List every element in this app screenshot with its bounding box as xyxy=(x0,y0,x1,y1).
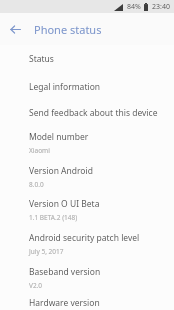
button[interactable]: Hardware version xyxy=(0,295,174,310)
button[interactable]: Version O UI Beta xyxy=(0,193,174,227)
button[interactable]: Back xyxy=(0,14,30,44)
staticText: Send feedback about this device xyxy=(29,107,158,119)
staticText: Model number xyxy=(29,131,89,143)
button[interactable]: Model number xyxy=(0,125,174,160)
button[interactable]: Status xyxy=(0,45,174,73)
staticText: Android security patch level xyxy=(29,232,140,244)
staticText: Version O UI Beta xyxy=(29,198,100,210)
staticText: Legal information xyxy=(29,81,101,93)
staticText: Hardware version xyxy=(29,297,100,309)
button[interactable]: Send feedback about this device xyxy=(0,101,174,125)
staticText: 8.0.0 xyxy=(29,180,44,189)
staticText: 23:40 xyxy=(152,2,170,12)
staticText: Version Android xyxy=(29,165,93,177)
button[interactable]: Android security patch level xyxy=(0,227,174,261)
staticText: 84% xyxy=(127,2,141,12)
staticText: 1.1 BETA.2 (148) xyxy=(29,213,78,222)
staticText: July 5, 2017 xyxy=(29,247,64,256)
button[interactable]: Baseband version xyxy=(0,261,174,295)
staticText: Baseband version xyxy=(29,266,101,278)
staticText: Xiaomi xyxy=(29,146,50,155)
staticText: Status xyxy=(29,53,54,65)
button[interactable]: Legal information xyxy=(0,73,174,101)
staticText: Phone status xyxy=(34,22,102,37)
staticText: V2.0 xyxy=(29,281,43,290)
button[interactable]: Version Android xyxy=(0,160,174,193)
